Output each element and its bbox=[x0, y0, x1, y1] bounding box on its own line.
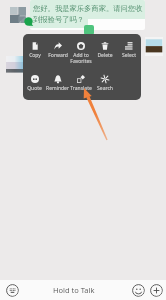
button[interactable]: More bbox=[149, 283, 163, 297]
staticText: Delete bbox=[97, 52, 113, 59]
staticText: Search bbox=[97, 85, 113, 92]
staticText: 您好。我是家乐多商家。请问您收 到报验号了吗？ bbox=[33, 4, 143, 24]
button[interactable]: Add to Favorites bbox=[69, 34, 93, 67]
staticText: Hold to Talk bbox=[53, 285, 95, 295]
button[interactable]: Search bbox=[93, 67, 117, 100]
button[interactable]: Reminder bbox=[46, 67, 69, 100]
staticText: Select bbox=[122, 52, 136, 59]
staticText: Translate bbox=[70, 85, 92, 92]
staticText: Add to Favorites bbox=[70, 52, 92, 65]
button[interactable]: Forward bbox=[46, 34, 69, 67]
staticText: Forward bbox=[48, 52, 68, 59]
button[interactable]: Select bbox=[117, 34, 141, 67]
button[interactable]: Keyboard bbox=[5, 283, 19, 297]
button[interactable]: Quote bbox=[23, 67, 46, 100]
button[interactable]: Copy bbox=[23, 34, 46, 67]
button[interactable]: Delete bbox=[93, 34, 117, 67]
staticText: Reminder bbox=[46, 85, 69, 92]
button[interactable]: Emoji bbox=[131, 283, 145, 297]
staticText: Quote bbox=[27, 85, 42, 92]
staticText: Copy bbox=[29, 52, 41, 59]
button[interactable]: Translate bbox=[69, 67, 93, 100]
